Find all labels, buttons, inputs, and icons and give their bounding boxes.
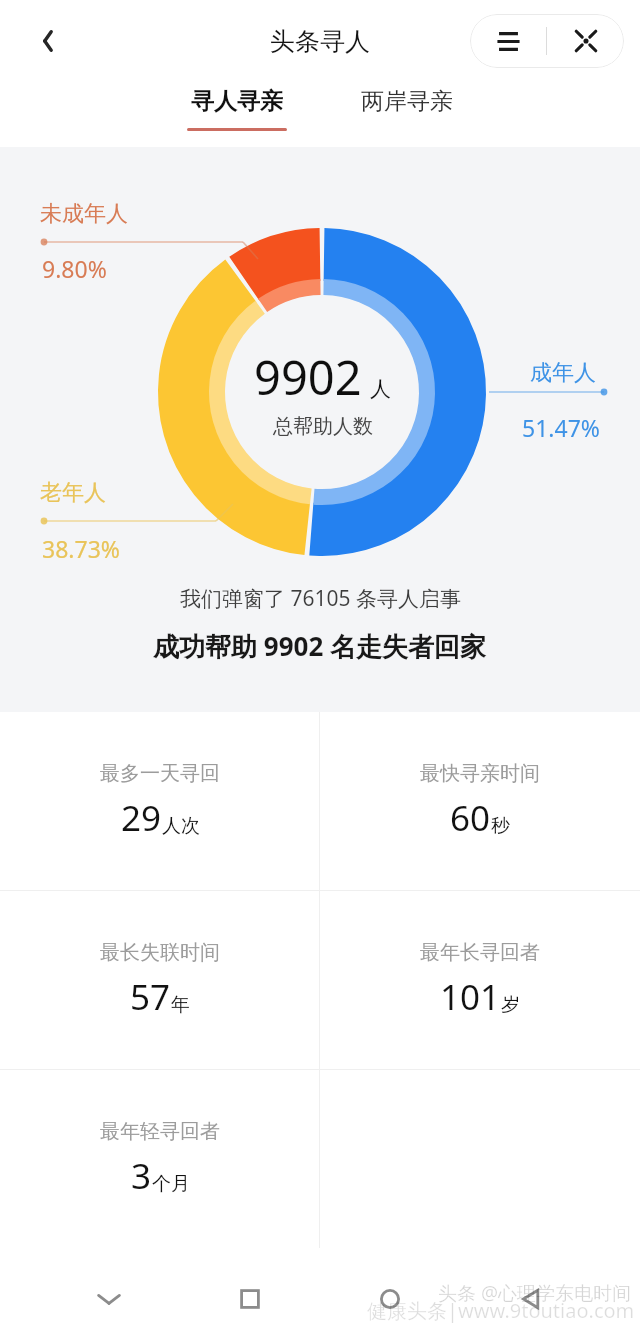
staticText: 9902 <box>254 345 362 409</box>
staticText: 51.47% <box>522 412 600 443</box>
staticText: 个月 <box>152 1172 190 1196</box>
staticText: 头条寻人 <box>270 26 370 57</box>
staticText: 29 <box>121 794 162 842</box>
staticText: 最长失联时间 <box>100 940 220 965</box>
staticText: 秒 <box>491 814 510 838</box>
button[interactable]: 最多一天寻回 <box>0 712 319 890</box>
staticText: 寻人寻亲 <box>191 87 283 116</box>
staticText: 人 <box>370 376 391 402</box>
staticText: 最年轻寻回者 <box>100 1119 220 1144</box>
staticText: 两岸寻亲 <box>361 87 453 116</box>
staticText: 成功帮助 9902 名走失者回家 <box>153 628 487 664</box>
button[interactable]: 最年轻寻回者 <box>0 1070 319 1248</box>
button[interactable]: Back <box>16 9 80 73</box>
staticText: 最年长寻回者 <box>420 940 540 965</box>
staticText: 我们弹窗了 76105 条寻人启事 <box>180 584 461 613</box>
staticText: 最多一天寻回 <box>100 761 220 786</box>
button[interactable]: 最年长寻回者 <box>320 891 640 1069</box>
staticText: 38.73% <box>42 533 120 564</box>
staticText: 101 <box>440 973 501 1021</box>
button[interactable]: 最快寻亲时间 <box>320 712 640 890</box>
staticText: 3 <box>131 1152 152 1200</box>
button[interactable]: Hide keyboard <box>78 1268 140 1330</box>
button[interactable]: Recent apps <box>219 1268 281 1330</box>
staticText: 头条 @心理学东电时间 <box>438 1280 632 1306</box>
button[interactable]: 两岸寻亲 <box>345 82 469 116</box>
staticText: 总帮助人数 <box>273 414 373 439</box>
staticText: 9.80% <box>42 253 107 284</box>
staticText: 岁 <box>501 993 520 1017</box>
staticText: 57 <box>130 973 171 1021</box>
staticText: 未成年人 <box>40 200 128 228</box>
staticText: 成年人 <box>530 359 596 387</box>
staticText: 健康头条|www.9toutiao.com <box>367 1297 635 1324</box>
button[interactable]: Close <box>547 14 624 68</box>
staticText: 最快寻亲时间 <box>420 761 540 786</box>
button[interactable]: 寻人寻亲 <box>171 82 303 131</box>
staticText: 老年人 <box>40 479 106 507</box>
staticText: 人次 <box>162 814 200 838</box>
staticText: 年 <box>171 993 190 1017</box>
button[interactable]: Home <box>359 1268 421 1330</box>
staticText: 60 <box>450 794 491 842</box>
button[interactable]: 最长失联时间 <box>0 891 319 1069</box>
button[interactable]: Menu <box>470 14 546 68</box>
button[interactable]: Back <box>500 1268 562 1330</box>
